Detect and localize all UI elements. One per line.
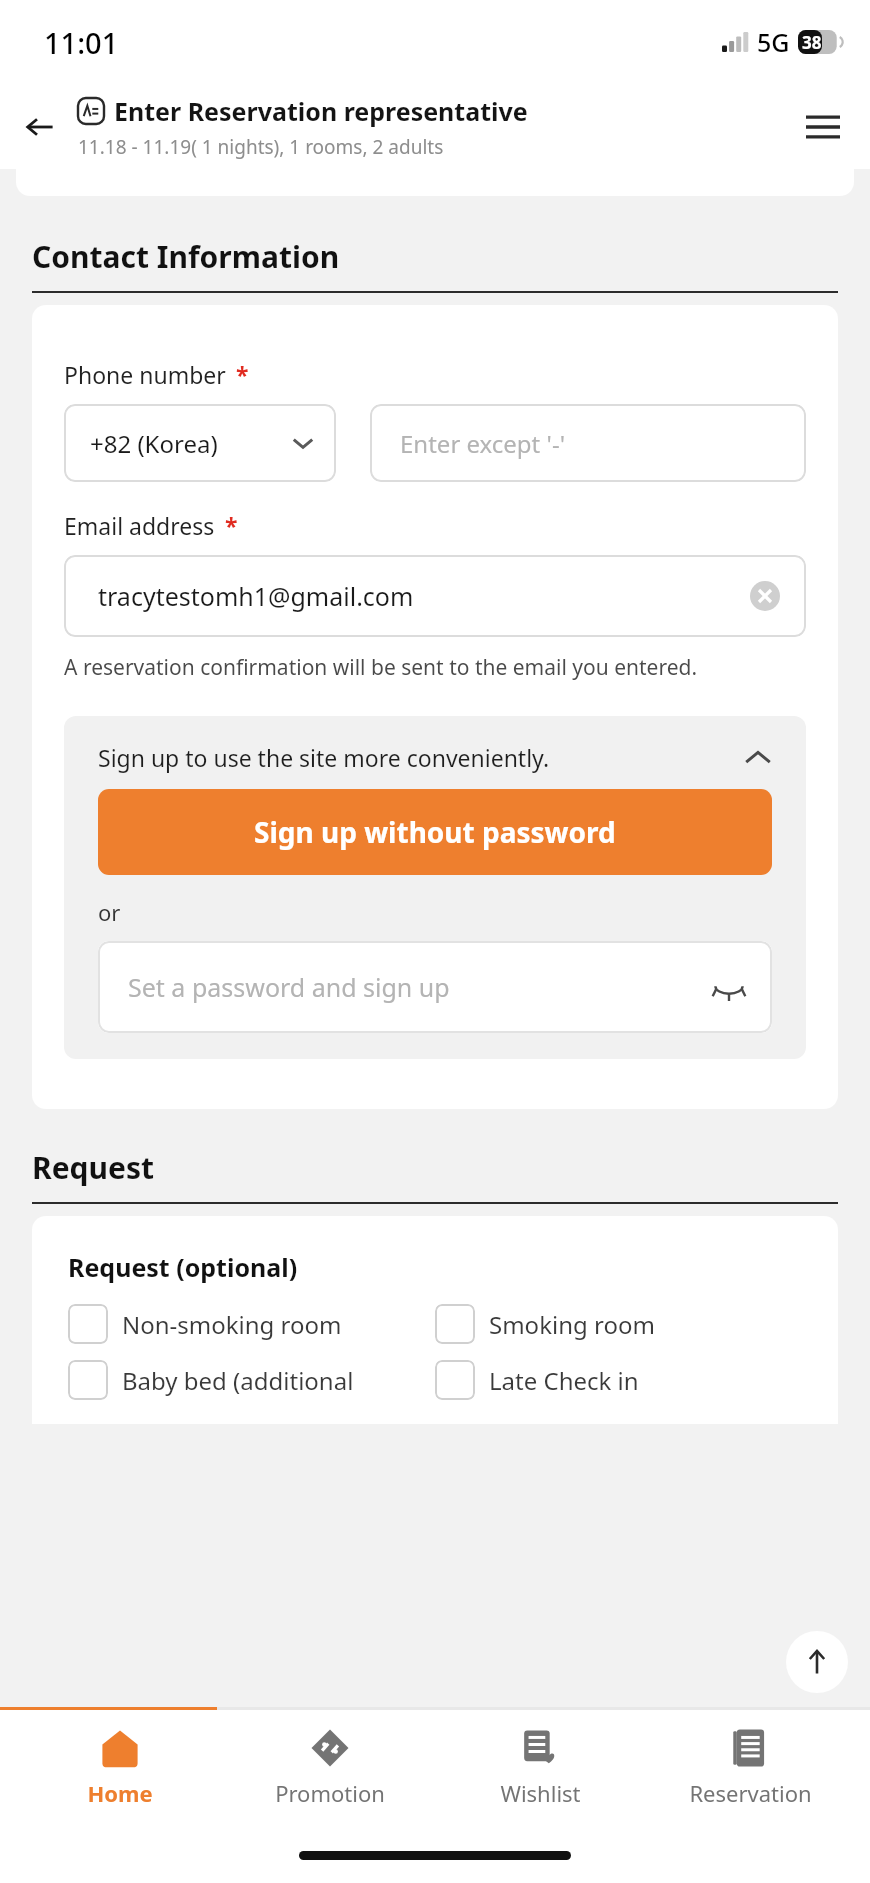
staticText: A reservation confirmation will be sent … bbox=[64, 653, 698, 682]
button[interactable]: Late Check in bbox=[435, 1360, 802, 1400]
staticText: +82 (Korea) bbox=[90, 427, 218, 460]
staticText: Smoking room bbox=[489, 1308, 655, 1341]
staticText: Enter except '-' bbox=[400, 427, 566, 460]
button[interactable]: Set a password and sign up bbox=[98, 941, 772, 1033]
button[interactable]: Non-smoking room bbox=[68, 1304, 435, 1344]
staticText: Contact Information bbox=[32, 236, 340, 277]
staticText: Set a password and sign up bbox=[128, 970, 450, 1004]
button[interactable]: Reservation bbox=[660, 1718, 840, 1816]
staticText: Wishlist bbox=[500, 1778, 581, 1808]
staticText: Request (optional) bbox=[68, 1250, 298, 1284]
staticText: Late Check in bbox=[489, 1364, 639, 1397]
staticText: Phone number bbox=[64, 359, 226, 390]
staticText: * bbox=[225, 510, 238, 541]
staticText: * bbox=[236, 359, 249, 390]
button[interactable]: Sign up to use the site more convenientl… bbox=[98, 742, 772, 773]
button[interactable]: Home bbox=[30, 1718, 210, 1816]
staticText: 5G bbox=[757, 25, 790, 59]
staticText: 11.18 - 11.19( 1 nights), 1 rooms, 2 adu… bbox=[78, 134, 444, 160]
staticText: Reservation bbox=[689, 1778, 812, 1808]
button[interactable]: Show password bbox=[712, 970, 746, 1004]
button[interactable]: Clear email bbox=[750, 581, 780, 611]
button[interactable]: Back bbox=[14, 101, 66, 153]
staticText: tracytestomh1@gmail.com bbox=[98, 579, 414, 613]
button[interactable]: Enter except '-' bbox=[370, 404, 806, 482]
staticText: Non-smoking room bbox=[122, 1308, 342, 1341]
staticText: 11:01 bbox=[44, 23, 119, 62]
staticText: Baby bed (additional bbox=[122, 1364, 354, 1397]
staticText: Sign up to use the site more convenientl… bbox=[98, 742, 744, 773]
button[interactable]: Promotion bbox=[240, 1718, 420, 1816]
button[interactable]: Baby bed (additional bbox=[68, 1360, 435, 1400]
staticText: Promotion bbox=[275, 1778, 385, 1808]
button[interactable]: Wishlist bbox=[450, 1718, 630, 1816]
staticText: Request bbox=[32, 1147, 155, 1188]
button[interactable]: Scroll to top bbox=[786, 1631, 848, 1693]
staticText: Sign up without password bbox=[254, 813, 616, 851]
staticText: Email address bbox=[64, 510, 215, 541]
button[interactable]: Sign up without password bbox=[98, 789, 772, 875]
staticText: or bbox=[98, 897, 121, 927]
button[interactable]: Smoking room bbox=[435, 1304, 802, 1344]
button[interactable]: Menu bbox=[796, 100, 850, 154]
staticText: Home bbox=[87, 1778, 153, 1808]
staticText: 38 bbox=[802, 31, 822, 54]
button[interactable]: tracytestomh1@gmail.com bbox=[64, 555, 806, 637]
button[interactable]: +82 (Korea) bbox=[64, 404, 336, 482]
staticText: Enter Reservation representative bbox=[114, 94, 528, 128]
